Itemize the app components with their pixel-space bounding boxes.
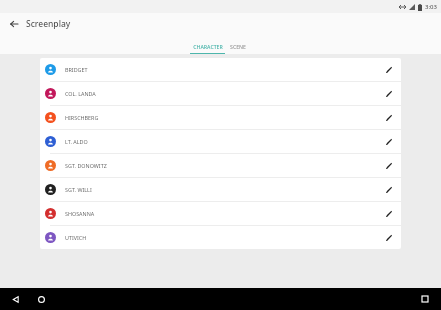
staticText: CHARACTER [193, 43, 223, 50]
staticText: UTIVICH [65, 234, 380, 241]
button[interactable]: CHARACTER [190, 35, 225, 54]
button[interactable]: Back [7, 17, 21, 31]
button[interactable]: Edit SGT. WILLI [380, 182, 395, 197]
staticText: BRIDGET [65, 66, 380, 73]
button[interactable]: SGT. WILLI [40, 178, 401, 201]
staticText: 3:03 [425, 3, 437, 11]
button[interactable]: UTIVICH [40, 226, 401, 249]
button[interactable]: LT. ALDO [40, 130, 401, 153]
button[interactable]: Recent apps [417, 291, 433, 307]
button[interactable]: Edit UTIVICH [380, 230, 395, 245]
staticText: HIRSCHBERG [65, 114, 380, 121]
button[interactable]: Edit HIRSCHBERG [380, 110, 395, 125]
button[interactable]: Edit COL. LANDA [380, 86, 395, 101]
button[interactable]: COL. LANDA [40, 82, 401, 105]
button[interactable]: SGT. DONOWITZ [40, 154, 401, 177]
staticText: SHOSANNA [65, 210, 380, 217]
button[interactable]: BRIDGET [40, 58, 401, 81]
staticText: SGT. WILLI [65, 186, 380, 193]
button[interactable]: Edit BRIDGET [380, 62, 395, 77]
staticText: COL. LANDA [65, 90, 380, 97]
button[interactable]: Edit SGT. DONOWITZ [380, 158, 395, 173]
button[interactable]: Back [7, 291, 23, 307]
staticText: Screenplay [26, 18, 71, 30]
staticText: LT. ALDO [65, 138, 380, 145]
button[interactable]: HIRSCHBERG [40, 106, 401, 129]
button[interactable]: Edit LT. ALDO [380, 134, 395, 149]
staticText: SCENE [230, 43, 246, 50]
button[interactable]: Edit SHOSANNA [380, 206, 395, 221]
button[interactable]: Home [33, 291, 49, 307]
staticText: SGT. DONOWITZ [65, 162, 380, 169]
button[interactable]: SHOSANNA [40, 202, 401, 225]
button[interactable]: SCENE [225, 35, 251, 54]
